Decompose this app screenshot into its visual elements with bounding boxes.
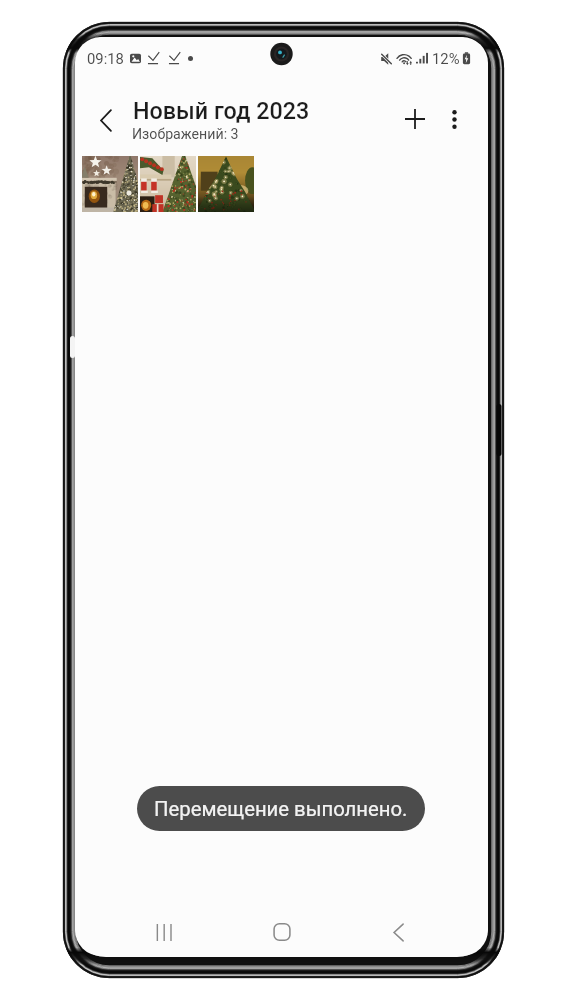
button[interactable]: Recents <box>141 910 185 954</box>
button[interactable]: Home <box>260 910 304 954</box>
staticText: Изображений: 3 <box>132 126 239 143</box>
button[interactable]: Photo <box>198 156 254 212</box>
staticText: Перемещение выполнено. <box>154 797 408 821</box>
button[interactable]: Back <box>84 98 128 142</box>
button[interactable]: Photo <box>140 156 196 212</box>
button[interactable]: Photo <box>82 156 138 212</box>
button[interactable]: Перемещение выполнено. <box>137 786 425 831</box>
button[interactable]: Back <box>376 910 420 954</box>
staticText: Новый год 2023 <box>133 97 310 124</box>
staticText: 12% <box>432 50 460 67</box>
staticText: 09:18 <box>87 50 124 67</box>
button[interactable]: More options <box>432 97 476 141</box>
button[interactable]: Add <box>393 97 437 141</box>
